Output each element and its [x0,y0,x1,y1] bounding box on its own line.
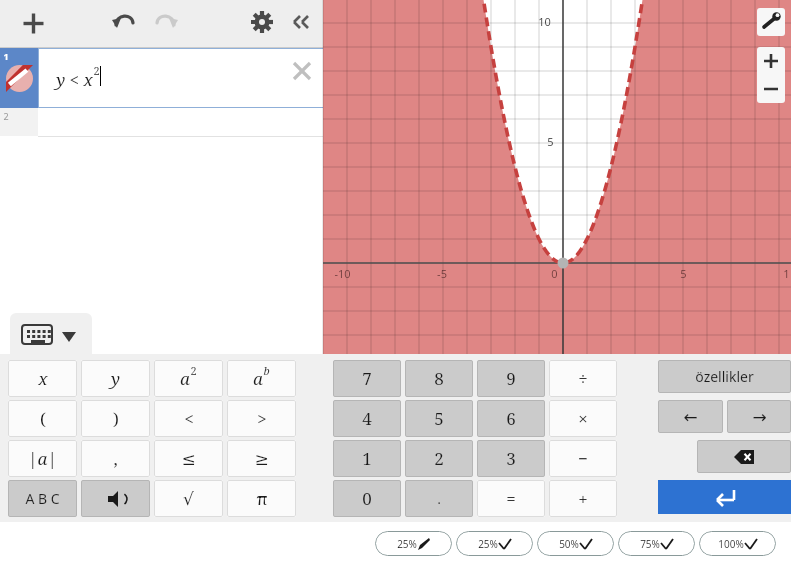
staticText: A B C [25,489,60,508]
button[interactable]: 7 [333,360,401,397]
staticText: → [752,407,767,427]
staticText: ( [40,407,46,430]
staticText: 3 [506,447,516,470]
button[interactable]: 2 [405,440,473,477]
staticText: , [113,447,118,470]
staticText: -5 [437,266,447,281]
button[interactable] [81,480,150,517]
button[interactable]: 1 [333,440,401,477]
button[interactable]: 6 [477,400,545,437]
staticText: a [180,367,190,390]
staticText: 2 [190,363,197,378]
staticText: − [578,447,588,470]
staticText: + [578,487,588,510]
button[interactable]: 100% [699,531,776,556]
button[interactable]: Enter [658,480,791,514]
button[interactable]: = [477,480,545,517]
button[interactable]: y [81,360,150,397]
button[interactable]: 1 [0,48,323,108]
staticText: π [256,487,268,510]
staticText: > [257,407,267,430]
staticText: 1 [362,447,372,470]
staticText: . [437,490,441,508]
button[interactable]: ÷ [549,360,617,397]
button[interactable]: |a| [8,440,77,477]
staticText: 0 [362,487,372,510]
button[interactable]: Zoom in [757,47,785,75]
button[interactable]: < [154,400,223,437]
button[interactable]: Backspace [697,440,791,473]
button[interactable]: a [227,360,296,397]
staticText: × [578,407,588,430]
button[interactable]: özellikler [658,360,791,393]
staticText: 100% [718,537,744,551]
button[interactable]: ( [8,400,77,437]
button[interactable]: Move cursor left [658,400,723,433]
button[interactable]: x [8,360,77,397]
staticText: 2 [93,63,100,78]
staticText: y [111,367,120,390]
button[interactable]: Add expression [10,0,57,47]
button[interactable]: 2 [0,108,323,136]
staticText: ) [113,407,119,430]
staticText: 9 [506,367,516,390]
button[interactable]: ) [81,400,150,437]
staticText: √ [183,489,194,509]
button[interactable]: 50% [537,531,614,556]
button[interactable]: × [549,400,617,437]
staticText: ← [683,407,698,427]
button[interactable]: Zoom out [757,75,785,103]
button[interactable]: Undo [103,0,147,44]
staticText: 1 [3,50,9,62]
staticText: 7 [362,367,372,390]
button[interactable]: a [154,360,223,397]
button[interactable]: 25% [375,531,452,556]
button[interactable]: ≥ [227,440,296,477]
staticText: 5 [680,266,687,281]
staticText: ÷ [578,367,588,390]
staticText: |a| [28,447,57,470]
button[interactable]: 8 [405,360,473,397]
staticText: 10 [538,14,551,29]
button[interactable]: , [81,440,150,477]
button[interactable]: Keyboard [10,313,92,357]
button[interactable]: . [405,480,473,517]
button[interactable]: − [549,440,617,477]
button[interactable]: √ [154,480,223,517]
staticText: 5 [434,407,444,430]
staticText: ≤ [181,449,196,469]
button[interactable]: A B C [8,480,77,517]
button[interactable]: Move cursor right [727,400,791,433]
staticText: 1 [783,266,790,281]
button[interactable]: 25% [456,531,533,556]
button[interactable]: Collapse panel [278,0,322,44]
staticText: 8 [434,367,444,390]
button[interactable]: 3 [477,440,545,477]
button[interactable]: > [227,400,296,437]
button[interactable]: 5 [405,400,473,437]
button[interactable]: Delete expression [289,58,315,84]
button[interactable]: ≤ [154,440,223,477]
staticText: özellikler [695,367,754,386]
button[interactable]: 0 [333,480,401,517]
button[interactable]: 75% [618,531,695,556]
staticText: b [263,363,270,378]
staticText: y < x [56,68,93,91]
staticText: < [184,407,194,430]
staticText: 50% [559,537,579,551]
staticText: ≥ [254,449,269,469]
button[interactable]: Redo [143,0,187,44]
staticText: 4 [362,407,372,430]
button[interactable]: π [227,480,296,517]
staticText: x [38,367,48,390]
staticText: 0 [551,266,558,281]
staticText: 2 [3,110,9,122]
button[interactable]: 9 [477,360,545,397]
button[interactable]: Graph settings [757,8,785,36]
staticText: 2 [434,447,444,470]
staticText: 6 [506,407,516,430]
button[interactable]: + [549,480,617,517]
staticText: -10 [334,266,351,281]
button[interactable]: 4 [333,400,401,437]
button[interactable]: Settings [240,0,284,44]
